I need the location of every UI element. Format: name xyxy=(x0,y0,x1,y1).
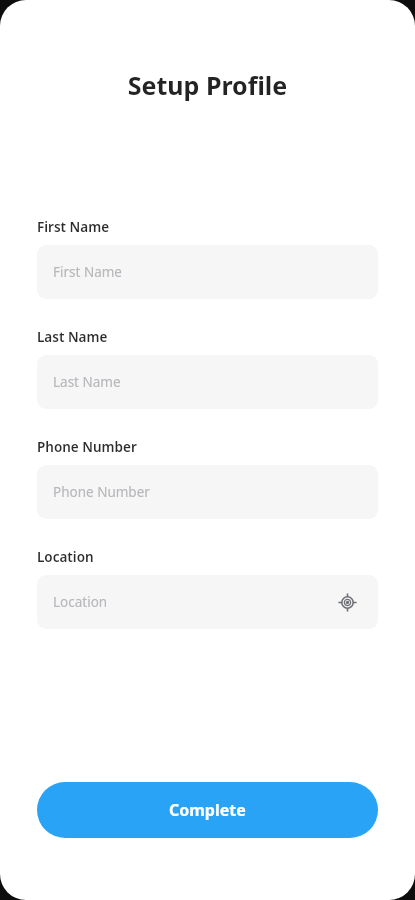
button[interactable]: First Name xyxy=(37,245,378,299)
button[interactable]: Use current location xyxy=(332,587,362,617)
staticText: Phone Number xyxy=(37,438,137,456)
staticText: Last Name xyxy=(37,328,108,346)
staticText: Location xyxy=(37,548,94,566)
button[interactable]: Phone Number xyxy=(37,465,378,519)
staticText: Phone Number xyxy=(53,483,362,501)
staticText: First Name xyxy=(53,263,362,281)
staticText: Last Name xyxy=(53,373,362,391)
button[interactable]: Complete xyxy=(37,782,378,838)
staticText: Setup Profile xyxy=(0,68,415,102)
staticText: First Name xyxy=(37,218,110,236)
button[interactable]: Location xyxy=(37,575,378,629)
button[interactable]: Last Name xyxy=(37,355,378,409)
staticText: Location xyxy=(53,593,332,611)
staticText: Complete xyxy=(169,799,246,821)
